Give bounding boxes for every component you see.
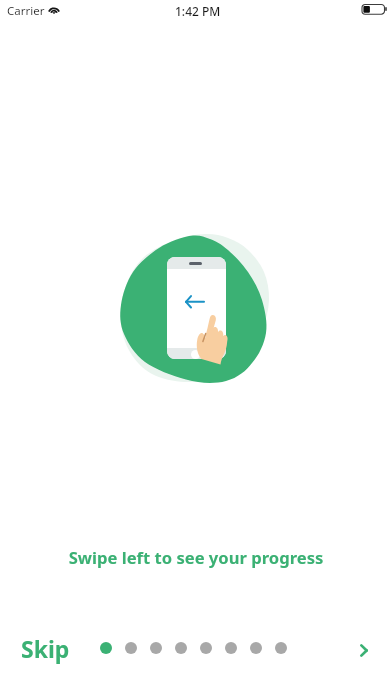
button[interactable]: [150, 642, 162, 654]
button[interactable]: Skip: [9, 629, 82, 668]
button[interactable]: [200, 642, 212, 654]
button[interactable]: Next: [348, 632, 380, 669]
button[interactable]: [225, 642, 237, 654]
staticText: Carrier: [7, 3, 45, 19]
staticText: 1:42 PM: [175, 3, 221, 19]
button[interactable]: [175, 642, 187, 654]
button[interactable]: [250, 642, 262, 654]
button[interactable]: [100, 642, 112, 654]
button[interactable]: [275, 642, 287, 654]
staticText: Skip: [21, 633, 70, 664]
staticText: Swipe left to see your progress: [0, 546, 392, 569]
button[interactable]: [125, 642, 137, 654]
